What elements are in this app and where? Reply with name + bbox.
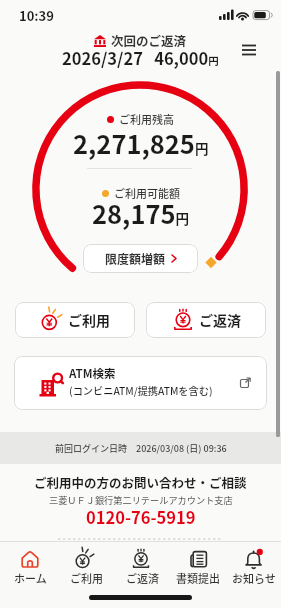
staticText: お知らせ	[232, 570, 276, 586]
staticText: 0120-76-5919	[86, 505, 196, 529]
staticText: ご利用中の方のお問い合わせ・ご相談	[34, 473, 247, 491]
button[interactable]	[236, 38, 262, 64]
staticText: (コンビニATM/提携ATMを含む)	[69, 383, 213, 398]
button[interactable]: ご利用	[15, 302, 135, 338]
staticText: 次回のご返済	[111, 31, 187, 49]
staticText: 三菱ＵＦＪ銀行第二リテールアカウント支店	[49, 493, 233, 506]
button[interactable]: ホーム	[2, 549, 58, 586]
staticText: 前回ログイン日時 2026/03/08 (日) 09:36	[55, 442, 227, 455]
button[interactable]: ご返済	[146, 302, 266, 338]
staticText: 書類提出	[176, 570, 220, 586]
staticText: 限度額増額	[105, 250, 166, 267]
button[interactable]: ATM検索	[14, 356, 267, 410]
staticText: ホーム	[14, 570, 47, 586]
staticText: ご返済	[199, 310, 241, 330]
staticText: 2026/3/27 46,000円	[62, 46, 219, 70]
staticText: ご利用残高	[119, 111, 174, 127]
button[interactable]: 限度額増額	[83, 244, 198, 273]
button[interactable]: ご利用	[58, 549, 114, 586]
staticText: 10:39	[19, 6, 54, 25]
button[interactable]: 0120-76-5919	[86, 505, 196, 529]
button[interactable]: お知らせ	[226, 549, 281, 586]
staticText: ご利用可能額	[114, 185, 180, 201]
staticText: ATM検索	[69, 365, 116, 382]
staticText: 2,271,825円	[73, 124, 209, 161]
staticText: ご返済	[126, 570, 159, 586]
button[interactable]: 書類提出	[170, 549, 226, 586]
staticText: ご利用	[70, 570, 103, 586]
button[interactable]: ご返済	[114, 549, 170, 586]
staticText: 28,175円	[92, 194, 190, 231]
staticText: ご利用	[68, 310, 110, 330]
